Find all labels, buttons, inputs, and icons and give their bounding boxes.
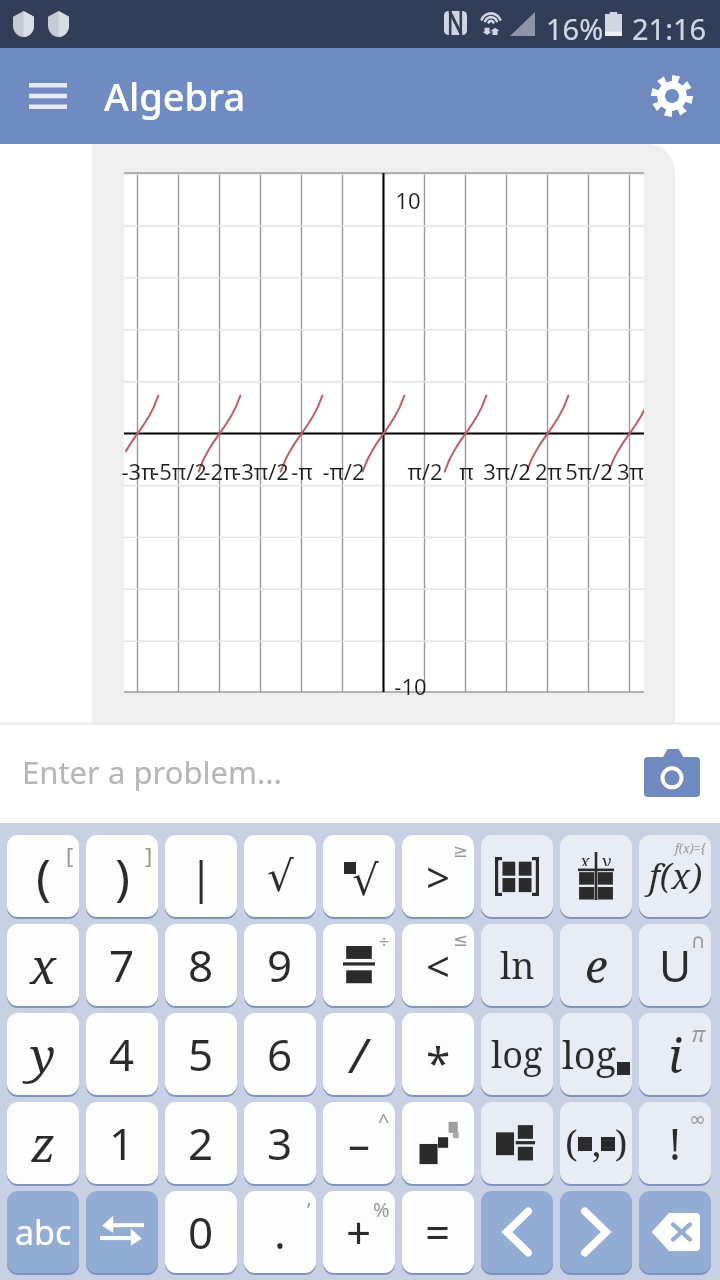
staticText: √: [352, 856, 379, 900]
button[interactable]: 8: [165, 924, 237, 1006]
staticText: ): [615, 1119, 628, 1168]
button[interactable]: [481, 1191, 553, 1273]
button[interactable]: ≤: [402, 924, 474, 1006]
staticText: ’: [307, 1196, 311, 1223]
staticText: -3π/2: [234, 456, 289, 486]
staticText: f(x)={: [675, 840, 706, 856]
button[interactable]: log: [560, 1013, 632, 1095]
staticText: ^: [378, 1107, 390, 1134]
button[interactable]: x: [7, 924, 79, 1006]
staticText: [: [66, 840, 74, 870]
staticText: x: [30, 933, 57, 998]
button[interactable]: [639, 1191, 711, 1273]
staticText: ≥: [453, 840, 469, 861]
staticText: .: [274, 1202, 286, 1262]
staticText: 3π/2: [483, 456, 531, 486]
staticText: √: [267, 852, 294, 901]
staticText: log: [562, 1028, 617, 1080]
staticText: z: [31, 1111, 56, 1176]
staticText: /: [350, 1022, 368, 1087]
staticText: y: [30, 1022, 56, 1087]
button[interactable]: √: [323, 835, 395, 917]
button[interactable]: 5: [165, 1013, 237, 1095]
button[interactable]: /: [323, 1013, 395, 1095]
staticText: *: [426, 1032, 451, 1092]
button[interactable]: log: [481, 1013, 553, 1095]
button[interactable]: y: [7, 1013, 79, 1095]
button[interactable]: (: [560, 1102, 632, 1184]
staticText: 0: [188, 1202, 214, 1262]
button[interactable]: [560, 1191, 632, 1273]
button[interactable]: π: [639, 1013, 711, 1095]
button[interactable]: f(x)={: [639, 835, 711, 917]
button[interactable]: ∞: [639, 1102, 711, 1184]
button[interactable]: [402, 1102, 474, 1184]
button[interactable]: abc: [7, 1191, 79, 1273]
staticText: |: [189, 846, 214, 906]
staticText: y: [602, 849, 612, 866]
staticText: -5π/2: [152, 456, 207, 486]
button[interactable]: %: [323, 1191, 395, 1273]
button[interactable]: ∩: [639, 924, 711, 1006]
staticText: 1: [109, 1113, 135, 1173]
button[interactable]: Camera: [636, 736, 708, 808]
staticText: (: [36, 842, 51, 910]
staticText: 21:16: [632, 9, 707, 48]
button[interactable]: 9: [244, 924, 316, 1006]
staticText: 2: [188, 1113, 214, 1173]
button[interactable]: [: [7, 835, 79, 917]
button[interactable]: ln: [481, 924, 553, 1006]
button[interactable]: z: [7, 1102, 79, 1184]
button[interactable]: 6: [244, 1013, 316, 1095]
button[interactable]: [481, 835, 553, 917]
button[interactable]: 4: [86, 1013, 158, 1095]
button[interactable]: =: [402, 1191, 474, 1273]
staticText: 7: [109, 935, 135, 995]
staticText: 3: [267, 1113, 293, 1173]
button[interactable]: ^: [323, 1102, 395, 1184]
staticText: Enter a problem...: [22, 751, 282, 793]
button[interactable]: *: [402, 1013, 474, 1095]
staticText: ]: [145, 840, 153, 870]
staticText: π/2: [407, 456, 443, 486]
staticText: ): [115, 842, 130, 910]
staticText: abc: [15, 1209, 72, 1255]
staticText: x: [580, 849, 590, 866]
staticText: 10: [395, 185, 421, 215]
button[interactable]: x: [560, 835, 632, 917]
staticText: (: [565, 1119, 578, 1168]
staticText: +: [346, 1202, 372, 1262]
staticText: ln: [500, 941, 535, 990]
staticText: e: [585, 934, 608, 997]
button[interactable]: ÷: [323, 924, 395, 1006]
staticText: ÷: [379, 929, 390, 954]
button[interactable]: [86, 1191, 158, 1273]
button[interactable]: Settings: [638, 62, 706, 130]
staticText: f(x): [649, 853, 702, 899]
staticText: 6: [267, 1024, 293, 1084]
staticText: ∩: [691, 929, 706, 952]
button[interactable]: 7: [86, 924, 158, 1006]
staticText: ≤: [453, 929, 469, 950]
staticText: 16%: [546, 9, 604, 48]
button[interactable]: ’: [244, 1191, 316, 1273]
button[interactable]: [481, 1102, 553, 1184]
staticText: π: [691, 1018, 706, 1048]
button[interactable]: ]: [86, 835, 158, 917]
staticText: Algebra: [104, 70, 246, 122]
button[interactable]: ≥: [402, 835, 474, 917]
button[interactable]: Menu: [14, 62, 82, 130]
button[interactable]: √: [244, 835, 316, 917]
staticText: 3π: [617, 456, 644, 486]
staticText: 4: [109, 1024, 135, 1084]
staticText: ,: [592, 1119, 601, 1168]
staticText: –: [348, 1113, 370, 1173]
button[interactable]: 0: [165, 1191, 237, 1273]
staticText: -π/2: [322, 456, 365, 486]
button[interactable]: 2: [165, 1102, 237, 1184]
staticText: 5: [188, 1024, 214, 1084]
button[interactable]: 1: [86, 1102, 158, 1184]
button[interactable]: |: [165, 835, 237, 917]
button[interactable]: e: [560, 924, 632, 1006]
button[interactable]: 3: [244, 1102, 316, 1184]
